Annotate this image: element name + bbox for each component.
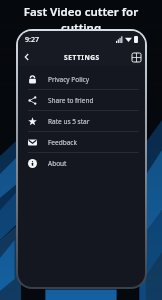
staticText: Feedback xyxy=(48,138,77,147)
staticText: video files easily. xyxy=(34,37,129,53)
staticText: Fast Video cutter for cutting xyxy=(8,4,154,36)
staticText: Privacy Policy xyxy=(48,75,90,84)
staticText: 9:27 xyxy=(25,35,39,45)
button[interactable]: About xyxy=(18,153,145,173)
staticText: SETTINGS xyxy=(64,53,100,62)
button[interactable]: Feedback xyxy=(18,132,145,152)
staticText: About xyxy=(48,159,67,168)
staticText: Rate us 5 star xyxy=(48,117,90,126)
button[interactable]: Rate us 5 star xyxy=(18,111,145,131)
staticText: Share to friend xyxy=(48,96,94,105)
button[interactable]: Privacy Policy xyxy=(18,69,145,89)
button[interactable]: Apps xyxy=(127,48,145,66)
button[interactable]: Back xyxy=(18,48,36,66)
button[interactable]: Share to friend xyxy=(18,90,145,110)
